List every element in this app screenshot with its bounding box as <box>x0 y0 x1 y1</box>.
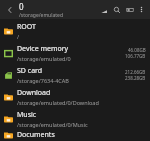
staticText: /storage/7634-4CAB <box>17 77 69 84</box>
staticText: SD card <box>17 66 43 76</box>
staticText: Device memory <box>17 44 69 54</box>
staticText: 238.28GB <box>125 75 146 81</box>
staticText: ROOT <box>17 22 36 32</box>
button[interactable]: Device memory <box>0 42 150 64</box>
button[interactable]: ROOT <box>0 20 150 42</box>
staticText: Music <box>17 110 37 120</box>
button[interactable]: Change view <box>123 3 136 16</box>
staticText: /storage/emulated/0/Download <box>17 99 99 106</box>
button[interactable]: Documents <box>0 130 150 141</box>
staticText: 212.66GB <box>125 69 146 75</box>
button[interactable]: SD card <box>0 64 150 86</box>
button[interactable]: Download <box>0 86 150 108</box>
button[interactable]: Music <box>0 108 150 130</box>
staticText: /storage/emulated/0 <box>17 55 71 62</box>
staticText: Download <box>17 88 51 98</box>
staticText: / <box>17 33 20 40</box>
staticText: 46.08GB <box>128 47 146 53</box>
button[interactable]: Search <box>110 3 123 16</box>
button[interactable]: Back <box>3 3 17 17</box>
button[interactable]: More options <box>136 4 147 15</box>
staticText: 106.77GB <box>125 53 146 59</box>
staticText: /storage/emulated <box>19 12 63 19</box>
staticText: /storage/emulated/0/Music <box>17 121 88 128</box>
staticText: 0 <box>19 1 24 12</box>
staticText: Documents <box>17 130 55 140</box>
